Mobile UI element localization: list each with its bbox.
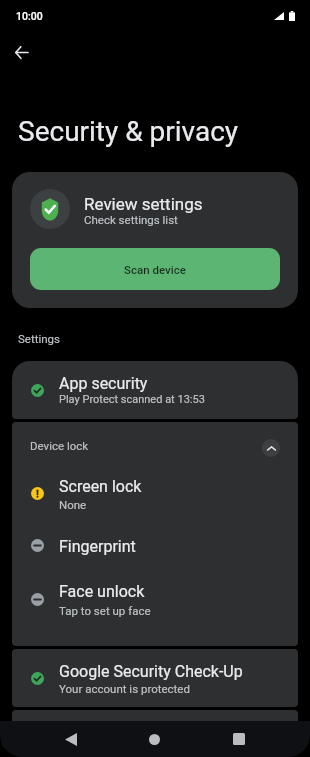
staticText: Play Protect scanned at 13:53: [59, 393, 205, 406]
staticText: Security & privacy: [18, 115, 239, 148]
button[interactable]: Collapse section: [262, 439, 280, 457]
staticText: Check settings list: [84, 213, 178, 226]
button[interactable]: Home: [132, 721, 177, 757]
staticText: Device lock: [30, 439, 89, 452]
button[interactable]: Fingerprint: [12, 518, 298, 570]
staticText: Face unlock: [59, 582, 145, 601]
staticText: Google Security Check-Up: [59, 662, 243, 681]
staticText: App security: [59, 374, 148, 393]
button[interactable]: Back: [3, 35, 39, 69]
button[interactable]: Scan device: [30, 248, 280, 290]
staticText: Scan device: [124, 263, 186, 276]
staticText: None: [59, 498, 87, 511]
staticText: Your account is protected: [59, 682, 190, 695]
button[interactable]: Face unlock: [12, 570, 298, 622]
button[interactable]: Recent apps: [216, 721, 261, 757]
staticText: Review settings: [84, 194, 203, 214]
staticText: Fingerprint: [59, 537, 136, 556]
staticText: Settings: [18, 332, 60, 345]
button[interactable]: Google Security Check-Up: [12, 649, 298, 707]
button[interactable]: Screen lock: [12, 466, 298, 518]
staticText: Tap to set up face: [59, 604, 151, 617]
button[interactable]: App security: [12, 361, 298, 419]
staticText: Screen lock: [59, 477, 142, 496]
staticText: 10:00: [16, 10, 43, 22]
button[interactable]: Back: [48, 721, 93, 757]
